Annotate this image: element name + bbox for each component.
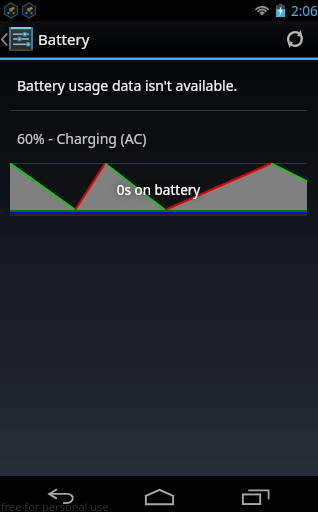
button[interactable]: Navigate up: [0, 27, 33, 51]
button[interactable]: Recent apps: [208, 476, 304, 512]
staticText: 2:06: [291, 2, 318, 20]
button[interactable]: Back: [13, 476, 109, 512]
button[interactable]: Refresh: [272, 21, 318, 57]
staticText: 60% - Charging (AC): [17, 129, 147, 148]
staticText: Battery: [38, 29, 90, 49]
staticText: 0s on battery: [10, 181, 307, 199]
staticText: free for personal use: [1, 499, 109, 512]
button[interactable]: Home: [111, 476, 207, 512]
staticText: Battery usage data isn't available.: [17, 76, 238, 95]
